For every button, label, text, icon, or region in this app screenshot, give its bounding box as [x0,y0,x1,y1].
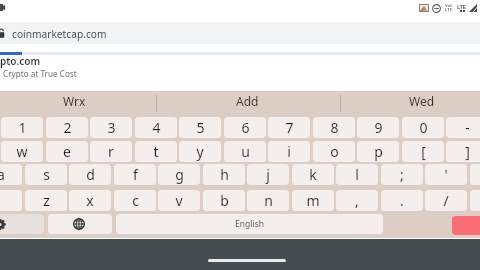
button[interactable]: m [292,190,334,211]
staticText: t [153,142,159,161]
staticText: m [306,191,320,210]
staticText: a [0,165,5,184]
button[interactable]: 4 [135,117,177,138]
button[interactable]: y [179,141,221,162]
button[interactable]: x [69,190,111,211]
button[interactable]: 3 [90,117,132,138]
staticText: 3 [107,118,116,137]
staticText: e [63,142,71,161]
button[interactable]: Wrx [0,88,161,114]
staticText: , [355,191,359,210]
staticText: j [266,165,270,184]
staticText: g [175,165,184,184]
button[interactable] [470,190,480,211]
staticText: ; [400,165,404,184]
button[interactable]: i [268,141,310,162]
staticText: v [175,191,183,210]
staticText: o [330,142,339,161]
staticText: p [374,142,383,161]
staticText: u [241,142,250,161]
button[interactable]: w [1,141,43,162]
button[interactable] [0,214,44,234]
button[interactable]: 2 [46,117,88,138]
button[interactable]: b [203,190,245,211]
staticText: LTE [457,3,466,10]
staticText: Add [236,93,259,109]
button[interactable]: 5 [179,117,221,138]
button[interactable] [470,164,480,185]
staticText: f [133,165,138,184]
staticText: s [43,165,50,184]
button[interactable]: r [90,141,132,162]
button[interactable]: Wed [335,88,480,114]
button[interactable]: 9 [357,117,399,138]
button[interactable]: o [313,141,355,162]
staticText: 7 [285,118,294,137]
button[interactable]: , [336,190,378,211]
button[interactable]: English [116,214,383,234]
button[interactable] [48,214,112,234]
button[interactable]: e [46,141,88,162]
button[interactable]: 1 [1,117,43,138]
staticText: c [132,191,139,210]
staticText: k [309,165,317,184]
staticText: b [220,191,229,210]
button[interactable]: k [292,164,334,185]
staticText: d [86,165,95,184]
staticText: h [220,165,229,184]
button[interactable]: 6 [224,117,266,138]
staticText: l [355,165,359,184]
button[interactable]: 0 [402,117,444,138]
button[interactable] [0,190,22,211]
button[interactable]: n [247,190,289,211]
button[interactable]: Enter [452,216,480,235]
button[interactable]: j [247,164,289,185]
button[interactable]: l [336,164,378,185]
button[interactable]: - [446,117,480,138]
button[interactable]: z [25,190,67,211]
button[interactable]: 7 [268,117,310,138]
button[interactable]: / [425,190,467,211]
button[interactable]: c [114,190,156,211]
button[interactable]: ] [446,141,480,162]
staticText: i [287,142,291,161]
button[interactable]: . [381,190,423,211]
button[interactable]: f [114,164,156,185]
button[interactable]: 8 [313,117,355,138]
staticText: [ [421,142,426,161]
button[interactable]: v [158,190,200,211]
button[interactable]: a [0,164,22,185]
staticText: coinmarketcap.com [12,27,107,41]
staticText: Wrx [63,93,86,109]
staticText: z [43,191,50,210]
button[interactable]: Add [160,88,334,114]
button[interactable]: s [25,164,67,185]
staticText: r [108,142,114,161]
button[interactable]: d [69,164,111,185]
staticText: English [235,218,264,230]
staticText: - [465,118,470,137]
staticText: 4 [152,118,161,137]
staticText: n [264,191,273,210]
button[interactable]: pto.com [0,55,480,85]
staticText: Wed [409,93,435,109]
staticText: VoL [445,3,453,9]
button[interactable]: p [357,141,399,162]
staticText: ' [444,165,448,184]
button[interactable]: [ [402,141,444,162]
button[interactable]: g [158,164,200,185]
staticText: x [86,191,94,210]
button[interactable]: ; [381,164,423,185]
staticText: w [16,142,28,161]
button[interactable]: t [135,141,177,162]
staticText: 1 [18,118,27,137]
button[interactable]: u [224,141,266,162]
staticText: pto.com [0,54,41,68]
button[interactable]: ' [425,164,467,185]
staticText: Crypto at True Cost [3,68,77,79]
button[interactable]: h [203,164,245,185]
staticText: 8 [330,118,339,137]
staticText: y [196,142,204,161]
staticText: LTE [445,7,453,13]
button[interactable]: coinmarketcap.com [0,22,480,44]
